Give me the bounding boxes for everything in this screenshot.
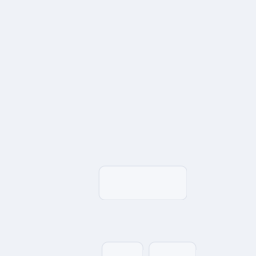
button[interactable]: Second option (149, 242, 196, 256)
button[interactable]: First option (102, 242, 143, 256)
